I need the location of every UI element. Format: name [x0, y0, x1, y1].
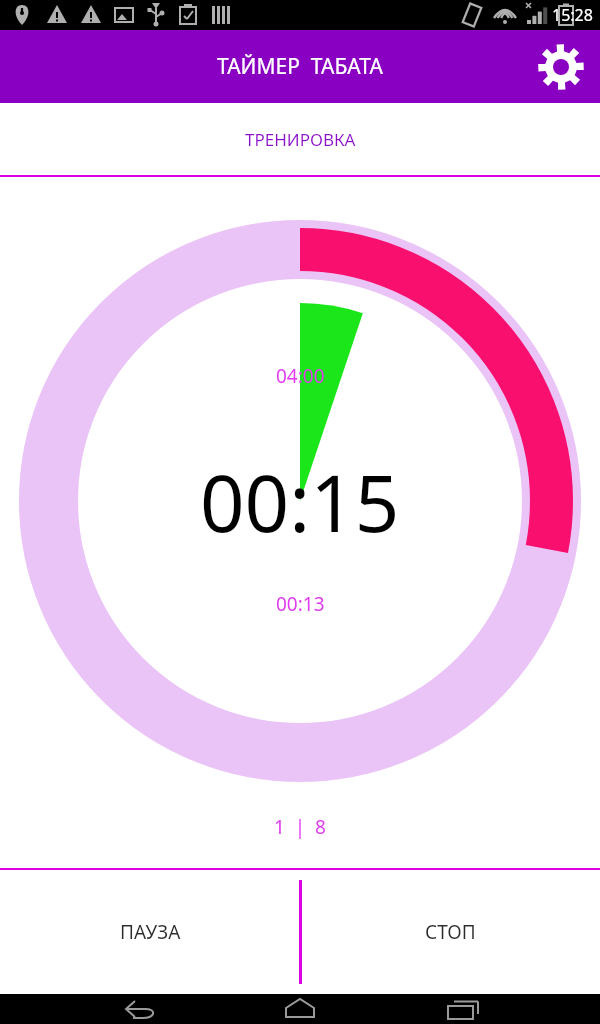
button[interactable]: Settings [534, 40, 588, 94]
staticText: СТОП [425, 919, 476, 945]
staticText: ПАУЗА [120, 919, 181, 945]
button[interactable]: СТОП [300, 870, 600, 994]
button[interactable]: ТРЕНИРОВКА [0, 103, 600, 175]
button[interactable]: ПАУЗА [0, 870, 300, 994]
staticText: 04:00 [276, 363, 325, 389]
staticText: ТАЙМЕР ТАБАТА [217, 52, 383, 81]
staticText: 00:15 [200, 449, 400, 555]
staticText: ТРЕНИРОВКА [245, 128, 356, 151]
staticText: 00:13 [276, 591, 325, 617]
staticText: 15:28 [552, 4, 593, 26]
staticText: 1 | 8 [274, 814, 326, 840]
